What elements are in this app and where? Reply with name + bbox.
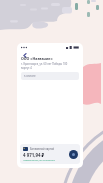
staticText: 4 971,94 ₽ [23, 152, 45, 158]
button[interactable]: Back [20, 51, 29, 60]
staticText: к оплате [24, 74, 36, 78]
button[interactable]: Банковской картой [20, 144, 80, 164]
button[interactable]: к оплате [21, 72, 79, 80]
staticText: Банковской картой [30, 147, 55, 151]
staticText: ООО «Название» [21, 56, 53, 61]
button[interactable]: Pay [69, 150, 78, 159]
staticText: г. Красноярск, ул. 60 лет Победы 100 кор… [21, 62, 68, 69]
staticText: Нажимая кнопку, вы соглашаетесь [23, 159, 56, 162]
